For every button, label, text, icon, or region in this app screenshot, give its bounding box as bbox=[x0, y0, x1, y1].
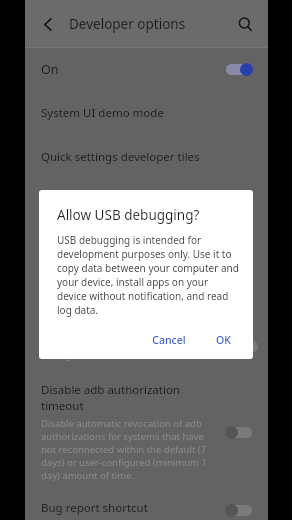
staticText: OK bbox=[216, 333, 231, 347]
staticText: Debug mode when Wi-Fi is connected bbox=[41, 349, 209, 362]
button[interactable]: On bbox=[25, 48, 268, 90]
staticText: On bbox=[41, 61, 59, 78]
button[interactable]: Cancel bbox=[144, 327, 194, 353]
staticText: Disable automatic revocation of adb auth… bbox=[41, 417, 216, 482]
staticText: Bug report shortcut bbox=[41, 500, 148, 516]
button[interactable]: Quick settings developer tiles bbox=[25, 146, 268, 168]
button[interactable]: Search bbox=[228, 7, 262, 41]
button[interactable]: Disable adb authorization timeout bbox=[25, 382, 268, 482]
staticText: System UI demo mode bbox=[41, 105, 164, 121]
button[interactable]: Wireless debugging toggle bbox=[222, 326, 268, 366]
button[interactable]: Back bbox=[31, 7, 65, 41]
staticText: Quick settings developer tiles bbox=[41, 149, 200, 165]
button[interactable]: System UI demo mode bbox=[25, 102, 268, 124]
staticText: USB debugging is intended for developmen… bbox=[57, 233, 239, 317]
button[interactable]: OK bbox=[208, 327, 239, 353]
button[interactable]: Wireless debugging bbox=[25, 326, 268, 366]
button[interactable]: Bug report shortcut bbox=[25, 500, 268, 520]
staticText: Allow USB debugging? bbox=[57, 206, 200, 224]
staticText: Developer options bbox=[69, 15, 186, 33]
staticText: Cancel bbox=[152, 333, 186, 347]
staticText: Disable adb authorization timeout bbox=[41, 382, 216, 414]
